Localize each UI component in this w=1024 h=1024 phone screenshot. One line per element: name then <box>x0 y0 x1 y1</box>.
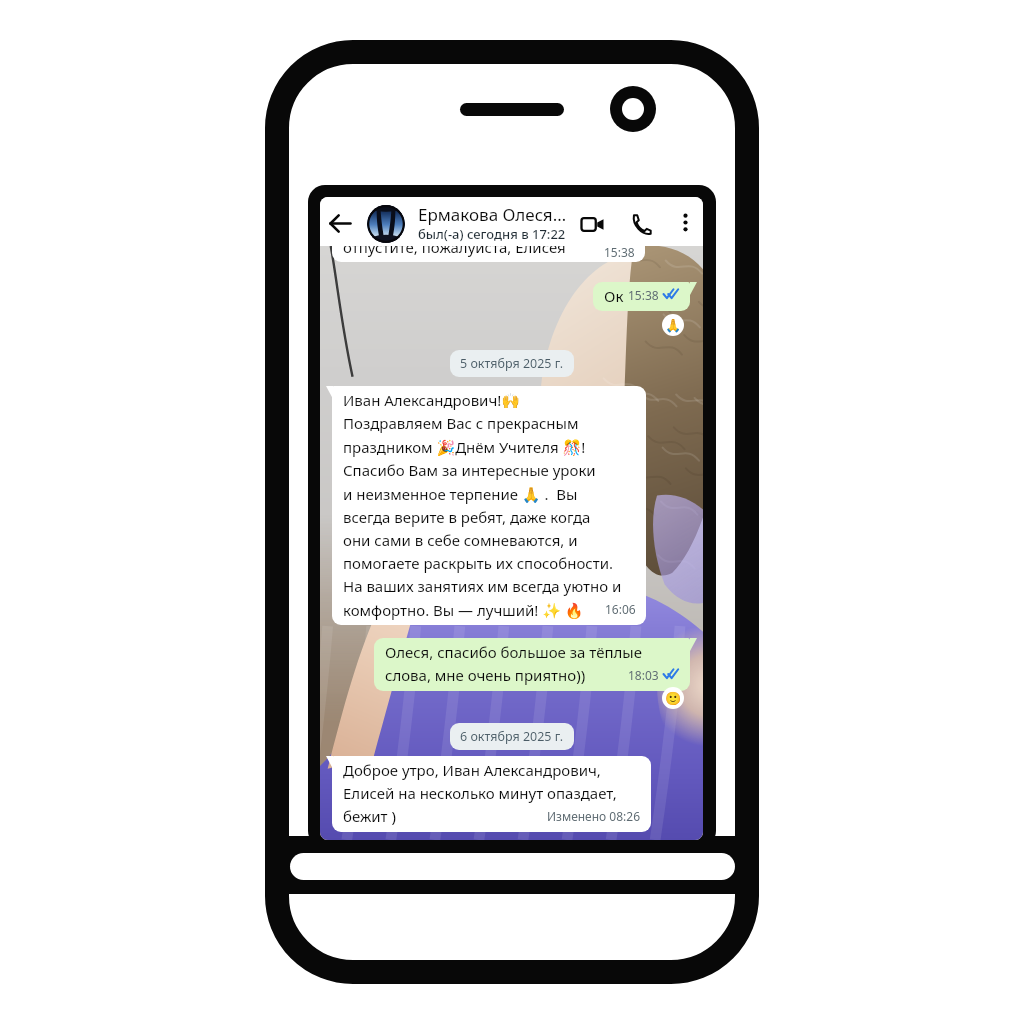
button[interactable]: Contact avatar <box>367 205 405 243</box>
staticText: 18:03 <box>628 667 659 683</box>
button[interactable]: 🙏 <box>662 314 684 336</box>
staticText: Олеся, спасибо большое за тёплые слова, … <box>385 642 642 686</box>
button[interactable]: 6 октября 2025 г. <box>450 723 574 750</box>
staticText: отпустите, пожалуйста, Елисея <box>343 246 566 257</box>
staticText: 16:06 <box>605 601 636 617</box>
staticText: Ермакова Олеся… <box>418 203 567 226</box>
button[interactable]: Ермакова Олеся… <box>418 203 588 243</box>
staticText: 6 октября 2025 г. <box>460 728 564 745</box>
staticText: 🙂 <box>665 691 682 706</box>
button[interactable]: Олеся, спасибо большое за тёплые слова, … <box>374 638 690 691</box>
button[interactable]: Voice call <box>627 210 655 238</box>
button[interactable]: 5 октября 2025 г. <box>450 350 574 377</box>
button[interactable]: Ок <box>593 282 690 311</box>
staticText: Иван Александрович!🙌 Поздравляем Вас с п… <box>343 390 622 620</box>
staticText: 15:38 <box>628 287 659 303</box>
staticText: Изменено 08:26 <box>547 808 641 824</box>
button[interactable]: Back <box>326 209 354 237</box>
button[interactable]: отпустите, пожалуйста, Елисея <box>332 246 645 262</box>
staticText: 15:38 <box>604 246 635 260</box>
staticText: был(-а) сегодня в 17:22 <box>418 225 566 243</box>
button[interactable]: Video call <box>578 210 606 238</box>
button[interactable]: Доброе утро, Иван Александрович, Елисей … <box>332 756 651 832</box>
staticText: 🙏 <box>665 318 682 333</box>
button[interactable]: Иван Александрович!🙌 Поздравляем Вас с п… <box>332 386 646 625</box>
staticText: 5 октября 2025 г. <box>460 355 564 372</box>
button[interactable]: 🙂 <box>662 687 684 709</box>
staticText: Доброе утро, Иван Александрович, Елисей … <box>343 760 617 827</box>
staticText: Ок <box>604 286 624 306</box>
button[interactable]: More options <box>673 210 697 234</box>
